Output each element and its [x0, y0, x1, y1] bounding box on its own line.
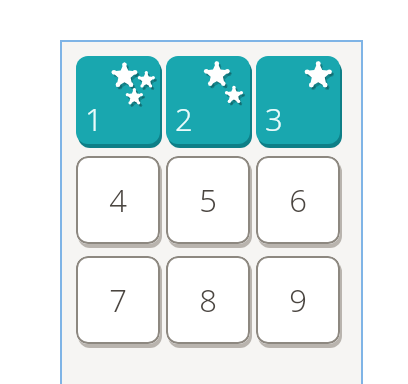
button[interactable]: 4 [76, 156, 160, 248]
staticText: 8 [199, 279, 217, 321]
button[interactable]: 7 [76, 256, 160, 348]
staticText: 5 [199, 179, 217, 221]
button[interactable]: 1 [76, 56, 160, 148]
staticText: 1 [85, 98, 103, 140]
staticText: 6 [289, 179, 307, 221]
staticText: 3 [265, 98, 283, 140]
button[interactable]: 2 [166, 56, 250, 148]
button[interactable]: 9 [256, 256, 340, 348]
button[interactable]: 3 [256, 56, 340, 148]
button[interactable]: 8 [166, 256, 250, 348]
button[interactable]: 5 [166, 156, 250, 248]
button[interactable]: 6 [256, 156, 340, 248]
staticText: 9 [289, 279, 307, 321]
staticText: 2 [175, 98, 193, 140]
staticText: 4 [109, 179, 127, 221]
staticText: 7 [109, 279, 127, 321]
